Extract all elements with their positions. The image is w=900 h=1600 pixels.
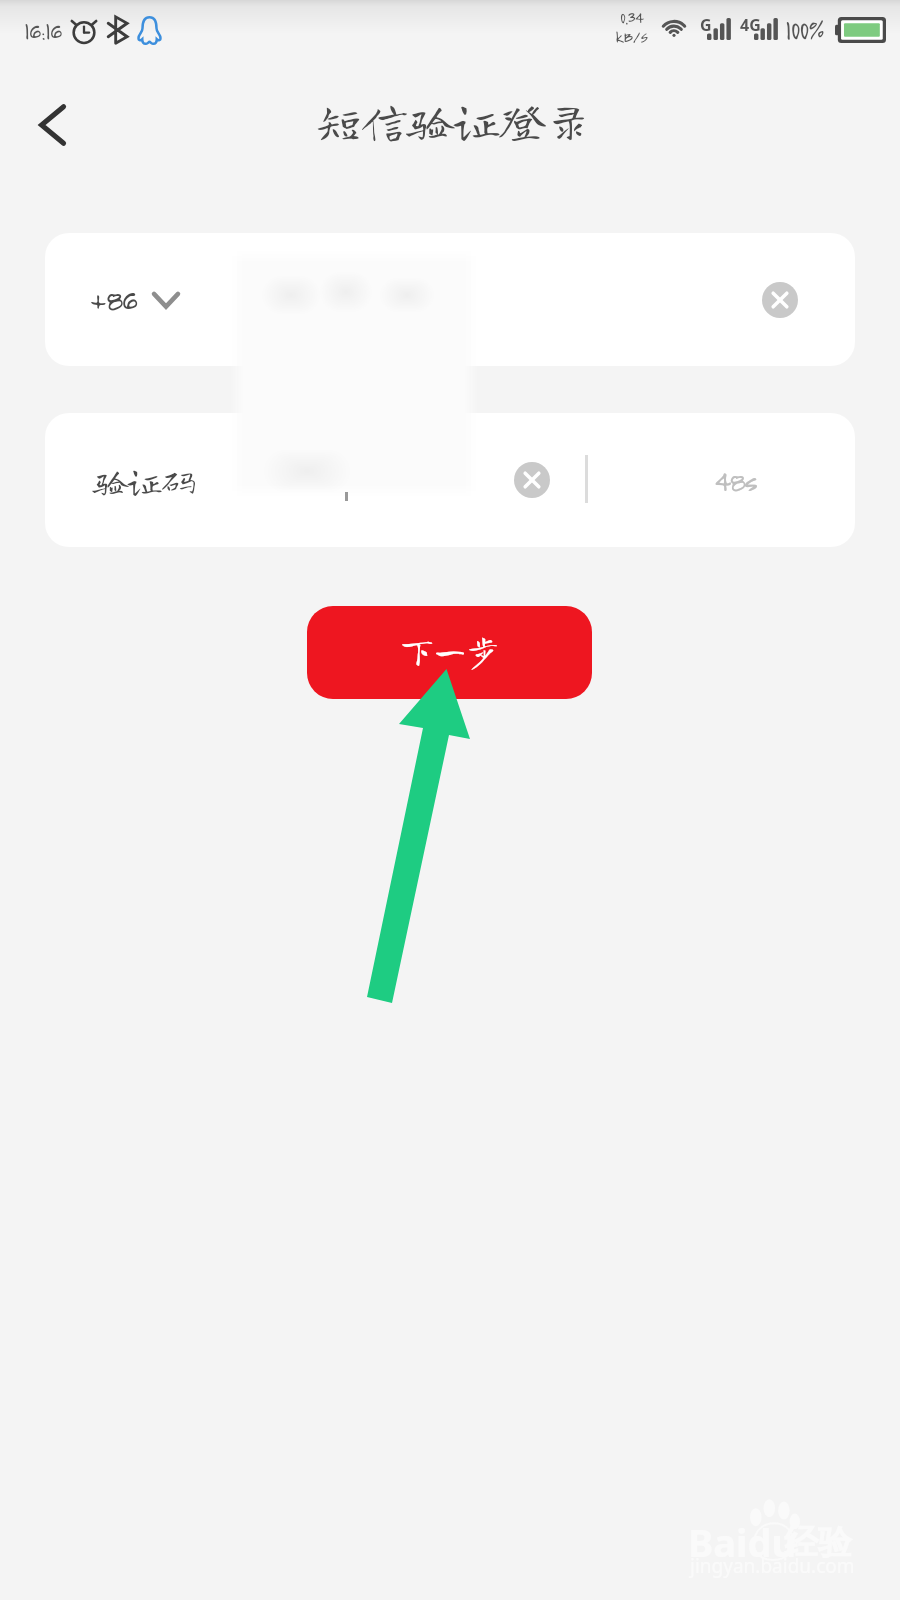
button[interactable]: +86 <box>89 281 181 319</box>
button[interactable]: 下一步 <box>307 606 592 699</box>
staticText: 短信验证登录 <box>315 97 591 144</box>
button[interactable]: +86 <box>45 233 855 366</box>
staticText: 0.34 <box>620 8 643 27</box>
button[interactable]: 验证码 <box>45 413 855 547</box>
staticText: 下一步 <box>400 634 499 668</box>
button[interactable]: 48s <box>615 430 855 530</box>
staticText: 48s <box>714 462 757 498</box>
button[interactable]: Clear <box>507 455 557 505</box>
staticText: 100% <box>785 13 824 46</box>
staticText: 16:16 <box>24 16 61 45</box>
button[interactable]: Back <box>16 88 90 162</box>
button[interactable]: Clear <box>755 275 805 325</box>
staticText: 验证码 <box>93 463 196 498</box>
staticText: +86 <box>89 281 137 319</box>
staticText: 4G <box>740 14 761 36</box>
staticText: G <box>700 14 712 36</box>
staticText: kB/S <box>615 27 648 46</box>
